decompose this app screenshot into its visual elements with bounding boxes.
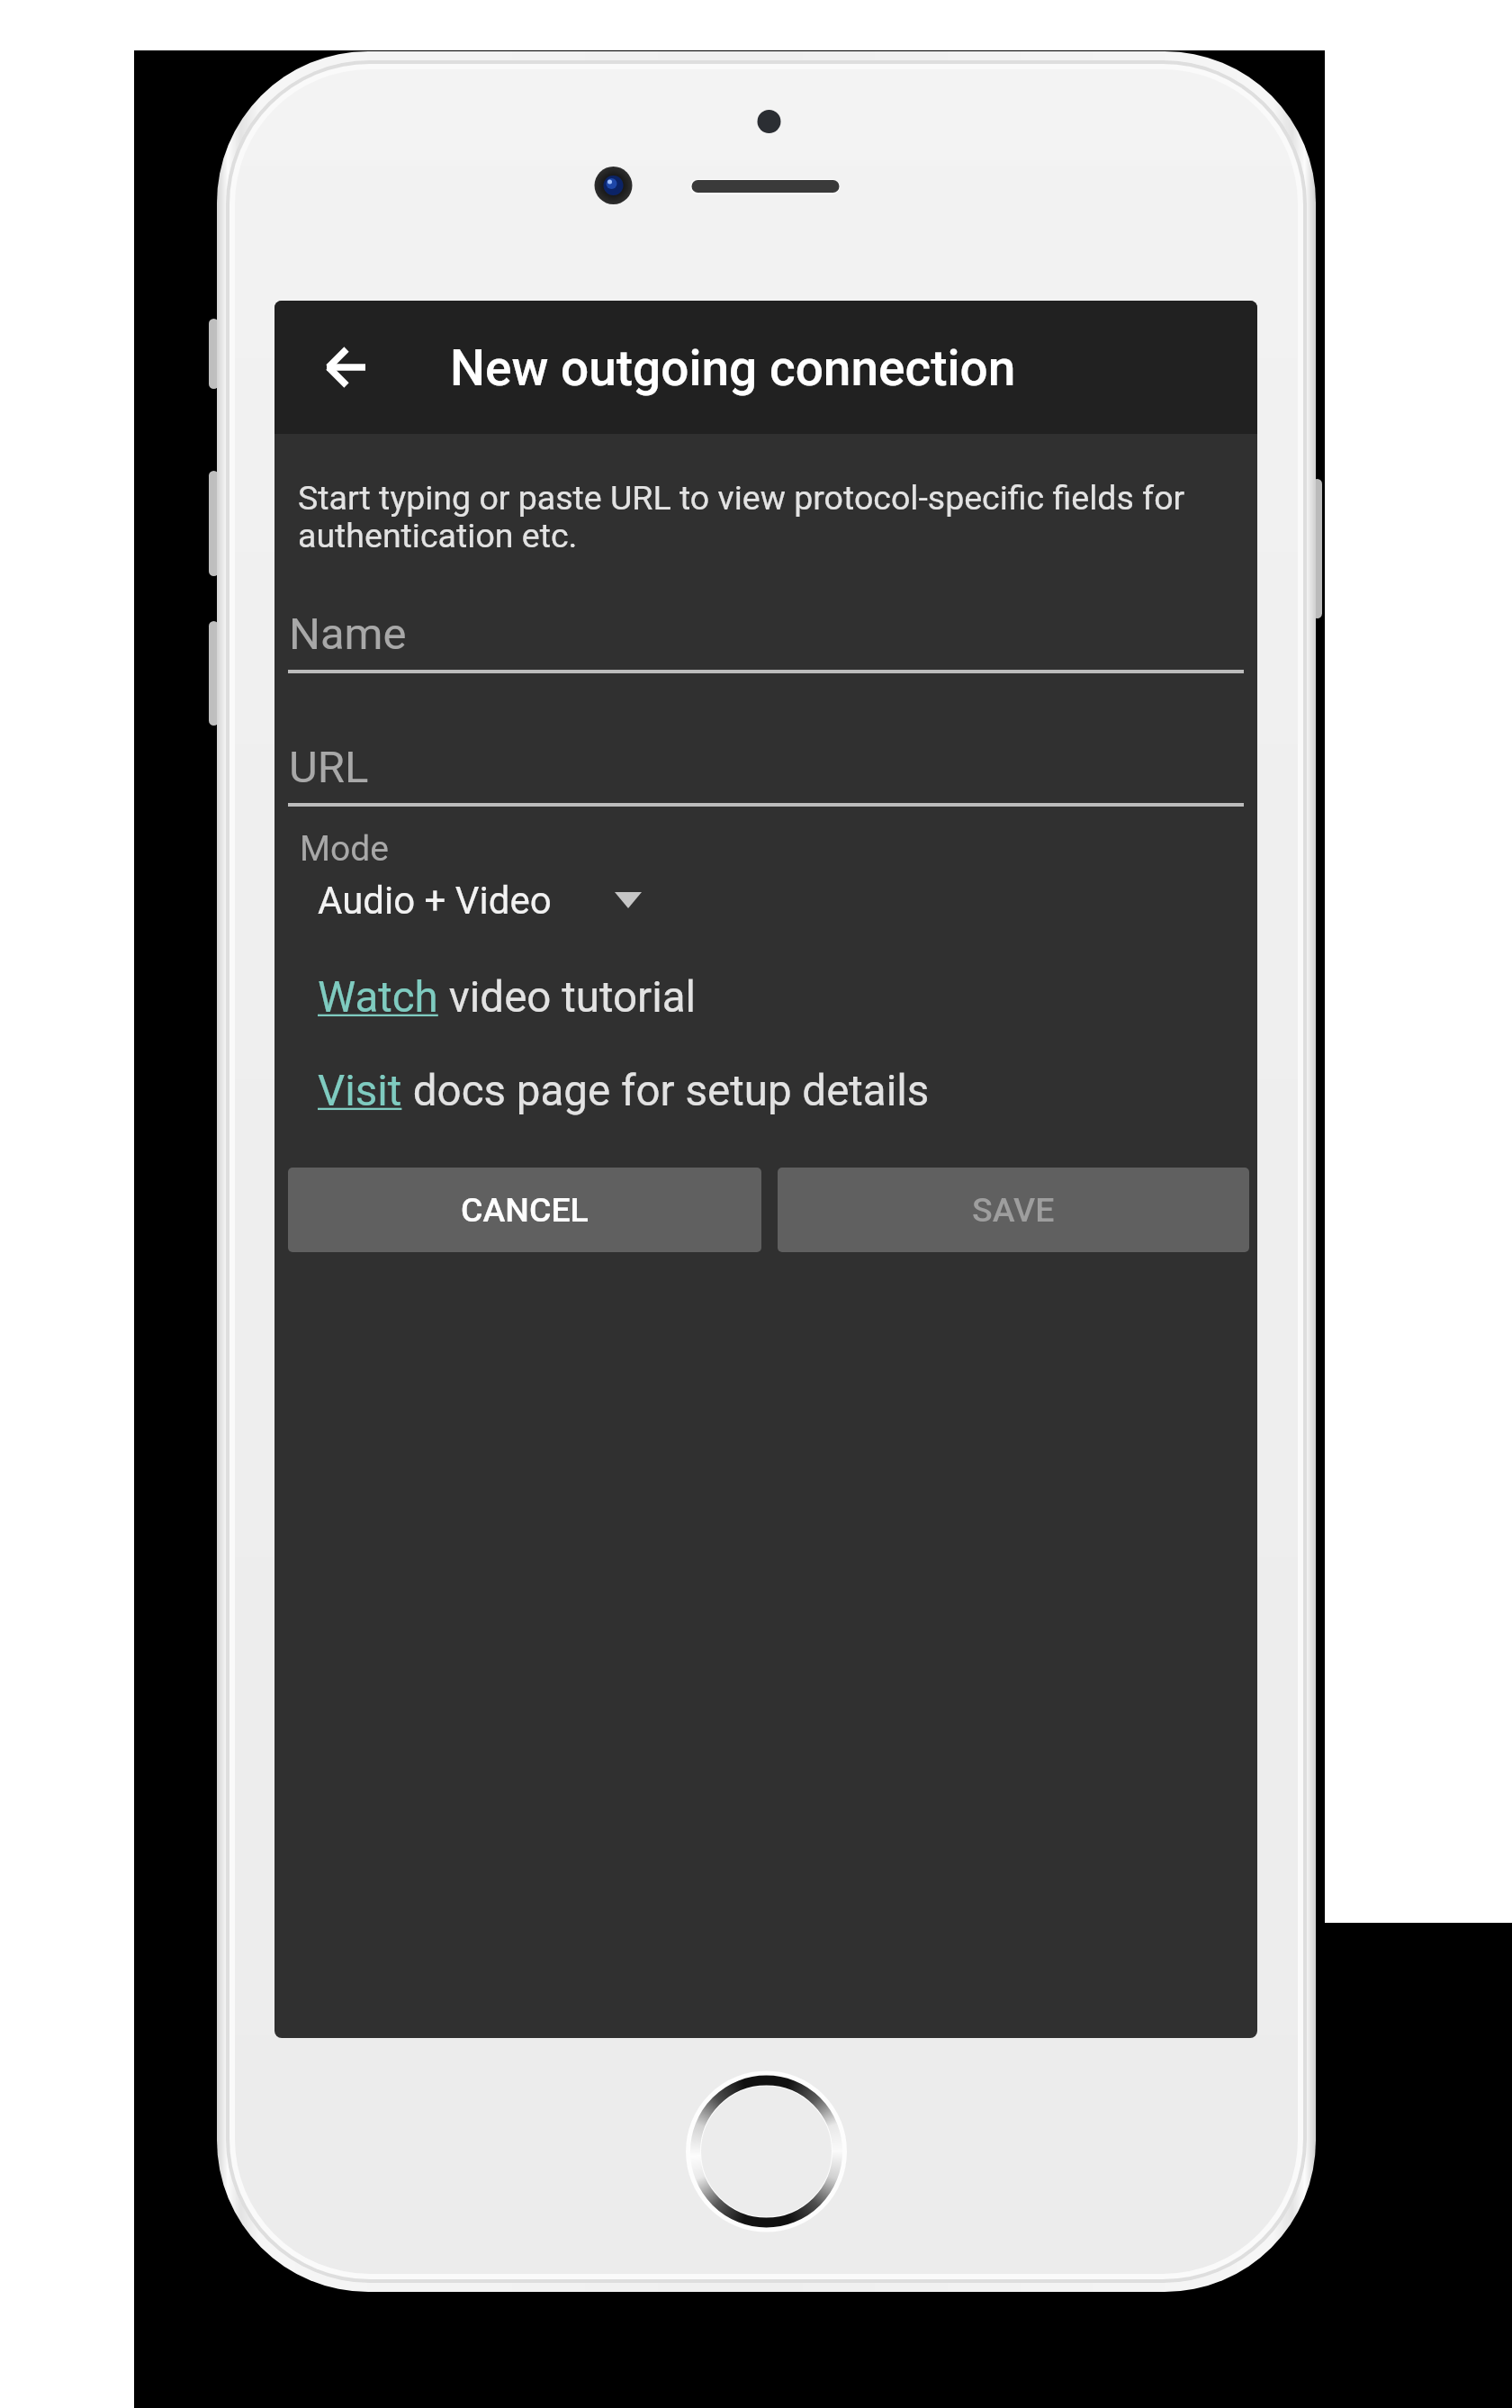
button[interactable]: Visit: [318, 1065, 930, 1117]
button[interactable]: Navigate up: [302, 324, 389, 410]
staticText: Visit: [318, 1066, 402, 1116]
staticText: video tutorial: [438, 972, 697, 1023]
staticText: URL: [289, 742, 369, 793]
staticText: New outgoing connection: [450, 339, 1016, 397]
staticText: Watch: [318, 972, 438, 1023]
staticText: Name: [289, 609, 407, 660]
staticText: Audio + Video: [318, 879, 552, 923]
button[interactable]: Watch: [318, 971, 697, 1024]
button[interactable]: Name: [288, 607, 1244, 681]
staticText: SAVE: [972, 1190, 1055, 1230]
button[interactable]: Audio + Video: [318, 877, 642, 924]
staticText: docs page for setup details: [402, 1066, 930, 1116]
button[interactable]: URL: [288, 740, 1244, 814]
staticText: Mode: [300, 828, 389, 870]
button[interactable]: CANCEL: [288, 1168, 761, 1252]
staticText: Start typing or paste URL to view protoc…: [298, 478, 1207, 555]
button[interactable]: SAVE: [778, 1168, 1249, 1252]
staticText: CANCEL: [461, 1190, 589, 1230]
